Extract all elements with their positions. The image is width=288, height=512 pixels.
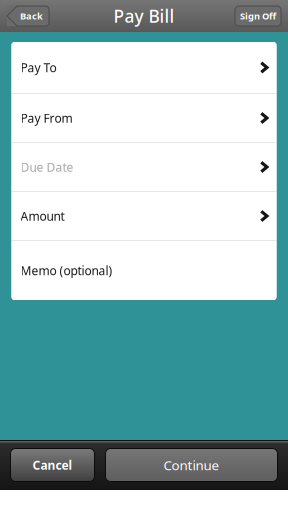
staticText: Pay Bill bbox=[113, 4, 174, 27]
button[interactable]: Cancel bbox=[10, 448, 94, 481]
staticText: Continue bbox=[163, 456, 219, 474]
staticText: Memo (optional) bbox=[20, 262, 112, 278]
staticText: Due Date bbox=[20, 159, 73, 175]
staticText: Amount bbox=[20, 208, 64, 224]
button[interactable]: Continue bbox=[105, 448, 277, 481]
button[interactable]: Memo (optional) bbox=[11, 241, 276, 300]
button[interactable]: Back bbox=[7, 6, 49, 26]
staticText: Cancel bbox=[32, 457, 72, 473]
button[interactable]: Pay From bbox=[11, 94, 276, 142]
staticText: Sign Off bbox=[240, 10, 276, 22]
button[interactable]: Sign Off bbox=[235, 6, 281, 26]
button[interactable]: Amount bbox=[11, 192, 276, 240]
staticText: Pay From bbox=[20, 110, 72, 126]
button[interactable]: Due Date bbox=[11, 143, 276, 191]
button[interactable]: Pay To bbox=[11, 42, 276, 93]
staticText: Pay To bbox=[20, 59, 56, 75]
staticText: Back bbox=[20, 10, 43, 22]
